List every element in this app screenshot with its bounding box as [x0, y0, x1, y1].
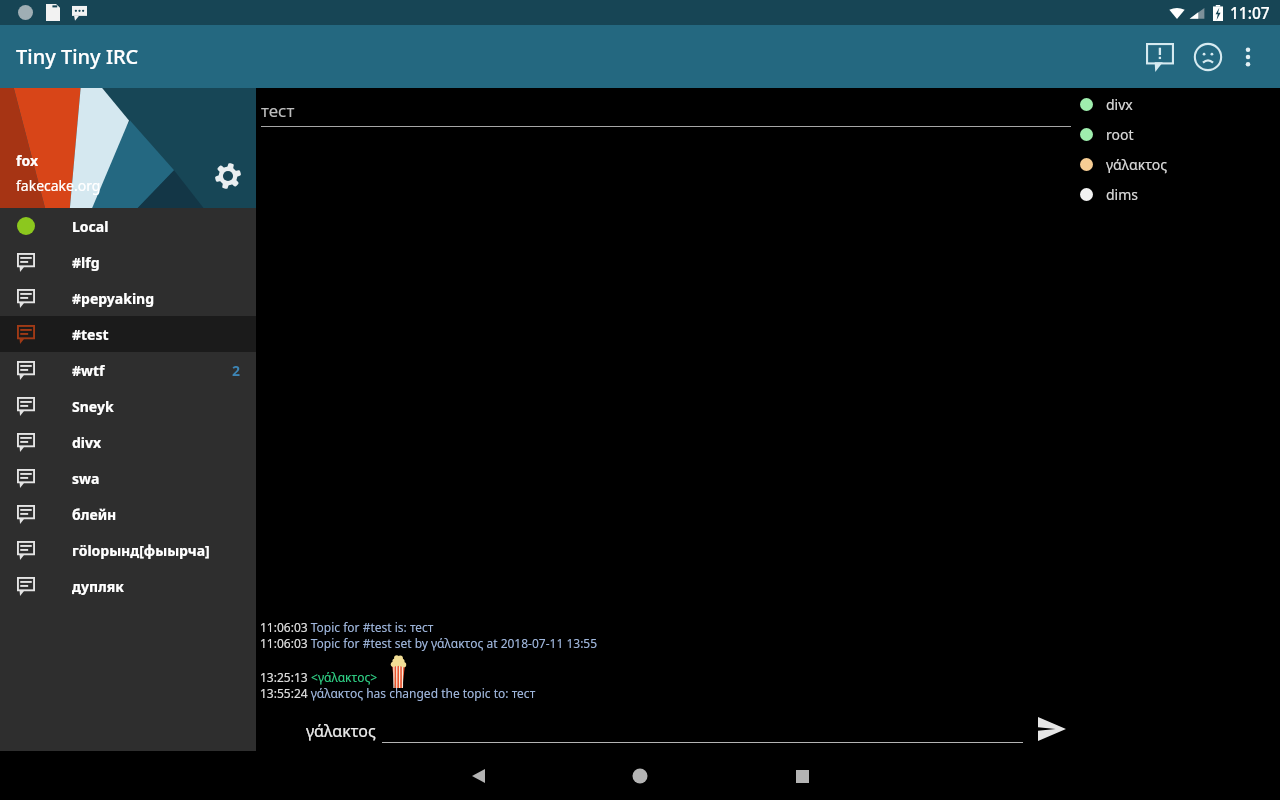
button[interactable]: Settings — [208, 156, 248, 196]
button[interactable]: #wtf — [0, 352, 256, 388]
button[interactable]: Send — [1023, 713, 1080, 750]
button[interactable]: гölорынд[фыырча] — [0, 532, 256, 568]
button[interactable]: блейн — [0, 496, 256, 532]
staticText: #lfg — [72, 253, 100, 272]
button[interactable]: dims — [1080, 179, 1280, 209]
staticText: Tiny Tiny IRC — [16, 43, 139, 70]
staticText: #test — [72, 325, 109, 344]
button[interactable]: More options — [1224, 33, 1272, 81]
button[interactable]: #test — [0, 316, 256, 352]
button[interactable]: Message input — [382, 720, 1023, 743]
button[interactable]: root — [1080, 119, 1280, 149]
button[interactable]: swa — [0, 460, 256, 496]
staticText: 11:06:03 Topic for #test set by γάλακτος… — [260, 635, 598, 651]
button[interactable]: Notices — [1136, 33, 1184, 81]
staticText: Local — [72, 217, 109, 236]
staticText: <γάλακτος> — [308, 669, 378, 685]
staticText: fakecake.org — [16, 176, 101, 195]
staticText: divx — [1106, 95, 1133, 114]
staticText: root — [1106, 125, 1134, 144]
button[interactable]: #lfg — [0, 244, 256, 280]
button[interactable]: Home — [616, 752, 664, 800]
staticText: divx — [72, 433, 102, 452]
button[interactable]: #pepyaking — [0, 280, 256, 316]
staticText: γάλακτος — [306, 720, 376, 742]
staticText: тест — [261, 99, 295, 122]
staticText: блейн — [72, 505, 117, 524]
staticText: 11:07 — [1230, 2, 1270, 23]
staticText: Sneyk — [72, 397, 114, 416]
button[interactable]: дупляк — [0, 568, 256, 604]
button[interactable]: Back — [454, 752, 502, 800]
staticText: гölорынд[фыырча] — [72, 541, 210, 560]
staticText: дупляк — [72, 577, 124, 596]
staticText: #pepyaking — [72, 289, 155, 308]
staticText: 2 — [232, 361, 241, 380]
staticText: dims — [1106, 185, 1139, 204]
button[interactable]: Local — [0, 208, 256, 244]
button[interactable]: divx — [0, 424, 256, 460]
button[interactable]: divx — [1080, 89, 1280, 119]
staticText: 13:25:13 — [260, 669, 308, 685]
staticText: γάλακτος — [1106, 155, 1167, 174]
button[interactable]: Recent apps — [778, 752, 826, 800]
button[interactable]: Sneyk — [0, 388, 256, 424]
staticText: 13:55:24 γάλακτος has changed the topic … — [260, 685, 536, 701]
staticText: 11:06:03 Topic for #test is: тест — [260, 619, 434, 635]
button[interactable]: Connection status — [1184, 33, 1232, 81]
staticText: #wtf — [72, 361, 105, 380]
button[interactable]: γάλακτος — [1080, 149, 1280, 179]
button[interactable]: тест — [256, 88, 1080, 127]
staticText: swa — [72, 469, 100, 488]
staticText: fox — [16, 151, 38, 170]
